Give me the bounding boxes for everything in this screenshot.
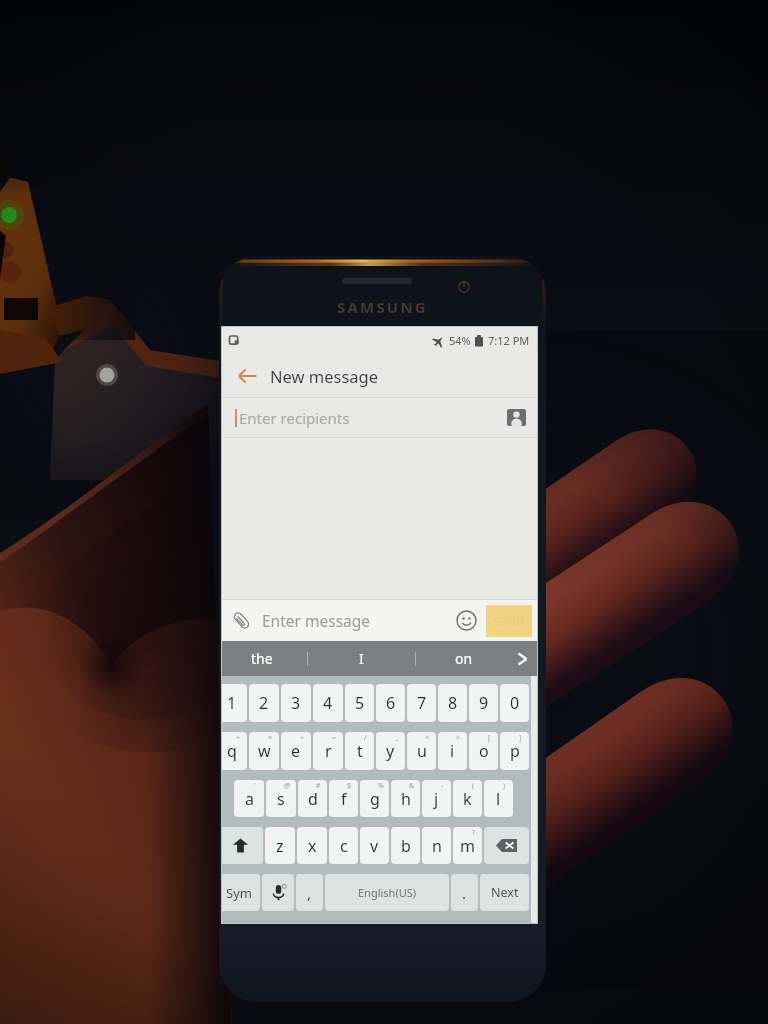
button[interactable]: ) <box>484 780 513 817</box>
staticText: 2 <box>259 692 269 714</box>
staticText: r <box>325 740 332 762</box>
staticText: English(US) <box>358 885 417 900</box>
button[interactable]: 0 <box>500 684 529 722</box>
button[interactable]: 4 <box>313 684 343 722</box>
button[interactable]: ' <box>234 780 264 817</box>
button[interactable]: - <box>422 780 451 817</box>
button[interactable]: x <box>297 827 327 864</box>
button[interactable]: _ <box>376 732 405 770</box>
button[interactable]: 1 <box>222 684 247 722</box>
staticText: k <box>463 788 472 810</box>
button[interactable]: ÷ <box>281 732 311 770</box>
button[interactable]: More suggestions <box>507 641 537 676</box>
button[interactable]: 5 <box>345 684 374 722</box>
button[interactable]: Attach file <box>232 611 251 630</box>
staticText: o <box>479 740 489 762</box>
button[interactable]: 8 <box>438 684 467 722</box>
button[interactable]: = <box>313 732 343 770</box>
button[interactable]: [ <box>469 732 498 770</box>
staticText: h <box>401 788 411 810</box>
button[interactable]: > <box>438 732 467 770</box>
button[interactable]: 7 <box>407 684 436 722</box>
button[interactable]: Back <box>236 361 258 391</box>
staticText: v <box>370 835 379 857</box>
staticText: # <box>316 781 321 791</box>
staticText: 0 <box>510 692 520 714</box>
staticText: e <box>291 740 301 762</box>
button[interactable]: ? <box>453 827 482 864</box>
staticText: ' <box>254 781 256 791</box>
button[interactable]: Add contacts <box>507 409 526 426</box>
staticText: ÷ <box>300 733 305 743</box>
staticText: 9 <box>479 692 489 714</box>
button[interactable]: Backspace <box>484 827 529 864</box>
button[interactable]: < <box>407 732 436 770</box>
button[interactable]: & <box>391 780 420 817</box>
button[interactable]: b <box>391 827 420 864</box>
staticText: + <box>236 733 241 743</box>
staticText: ) <box>503 781 506 791</box>
staticText: 7:12 PM <box>488 333 530 348</box>
button[interactable]: % <box>360 780 389 817</box>
button[interactable]: 6 <box>376 684 405 722</box>
button[interactable]: 3 <box>281 684 311 722</box>
button[interactable]: I <box>312 641 410 676</box>
button[interactable]: z <box>265 827 295 864</box>
button[interactable]: Space <box>325 874 449 911</box>
staticText: 3 <box>291 692 301 714</box>
button[interactable]: $ <box>329 780 358 817</box>
staticText: s <box>277 788 285 810</box>
button[interactable]: + <box>222 732 247 770</box>
staticText: c <box>340 835 348 857</box>
staticText: 4 <box>323 692 333 714</box>
staticText: ? <box>472 828 476 838</box>
staticText: the <box>251 649 273 668</box>
button[interactable]: × <box>249 732 279 770</box>
staticText: z <box>276 835 284 857</box>
button[interactable]: ( <box>453 780 482 817</box>
button[interactable]: v <box>360 827 389 864</box>
staticText: Next <box>491 884 519 901</box>
button[interactable]: # <box>298 780 327 817</box>
button[interactable]: Symbols <box>222 874 260 911</box>
button[interactable]: ] <box>500 732 529 770</box>
staticText: I <box>359 649 364 668</box>
staticText: 1 <box>227 692 237 714</box>
button[interactable]: the <box>222 641 302 676</box>
button[interactable]: Voice input <box>262 874 294 911</box>
button[interactable]: Emoji <box>456 610 477 631</box>
staticText: $ <box>347 781 352 791</box>
button[interactable]: n <box>422 827 451 864</box>
staticText: Enter recipients <box>239 408 350 428</box>
staticText: SAMSUNG <box>337 297 428 317</box>
button[interactable]: c <box>329 827 358 864</box>
staticText: New message <box>270 365 379 387</box>
button[interactable]: 9 <box>469 684 498 722</box>
staticText: l <box>496 788 501 810</box>
staticText: [ <box>488 733 491 743</box>
staticText: y <box>386 740 395 762</box>
staticText: x <box>308 835 317 857</box>
staticText: b <box>401 835 411 857</box>
staticText: - <box>441 781 444 791</box>
staticText: n <box>432 835 442 857</box>
staticText: Enter message <box>262 610 371 631</box>
button[interactable]: Period <box>451 874 478 911</box>
button[interactable]: on <box>420 641 507 676</box>
staticText: % <box>378 781 384 791</box>
button[interactable]: Shift <box>222 827 263 864</box>
staticText: 5 <box>355 692 365 714</box>
button[interactable]: / <box>345 732 374 770</box>
button[interactable]: Next <box>480 874 529 911</box>
button[interactable]: Comma <box>296 874 323 911</box>
staticText: Sym <box>226 884 252 902</box>
button[interactable]: 2 <box>249 684 279 722</box>
button[interactable]: Enter recipients <box>235 398 526 437</box>
staticText: 7 <box>417 692 427 714</box>
button[interactable]: @ <box>266 780 296 817</box>
other: Screenshot captured <box>229 335 240 346</box>
staticText: u <box>417 740 427 762</box>
staticText: ( <box>472 781 475 791</box>
